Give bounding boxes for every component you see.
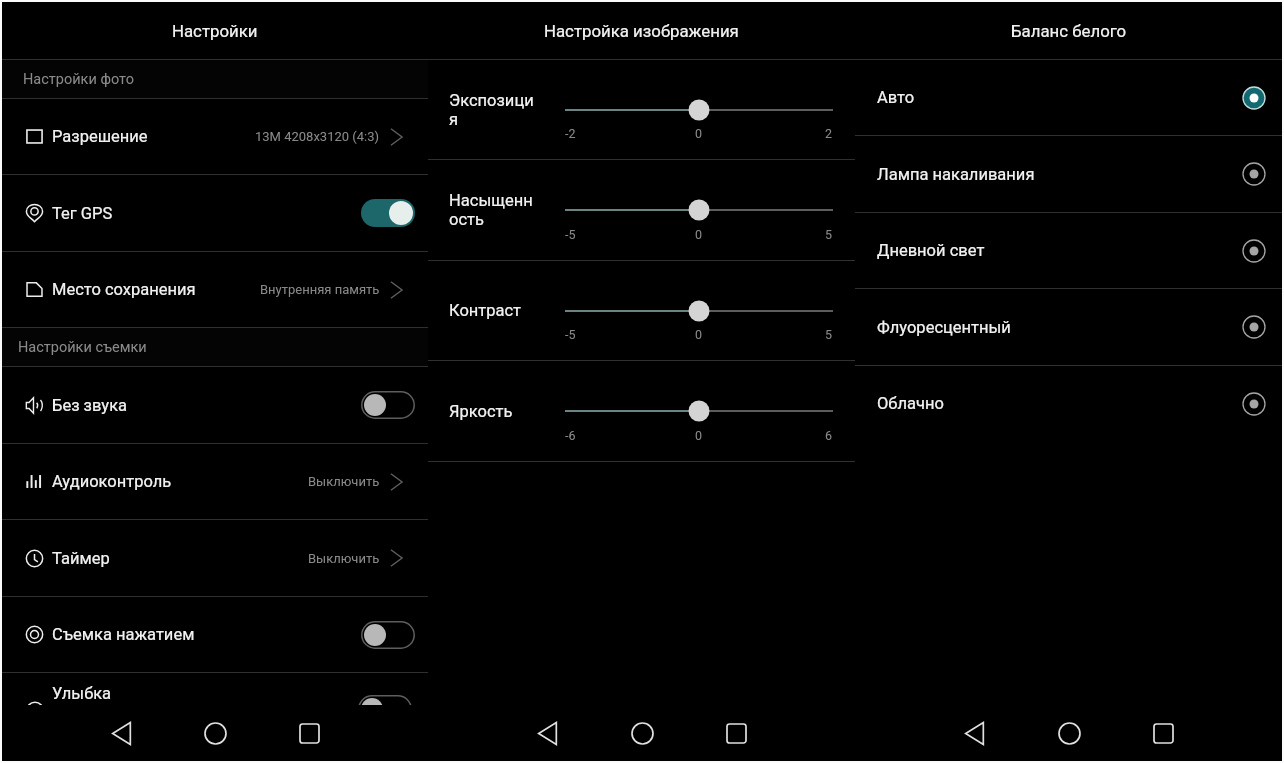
staticText: 13M 4208x3120 (4:3): [255, 129, 380, 144]
button[interactable]: Улыбка: [2, 673, 428, 753]
button[interactable]: Лампа накаливания: [855, 136, 1282, 212]
staticText: Внутренняя память: [260, 282, 380, 297]
staticText: Настройки съемки: [18, 339, 147, 356]
staticText: Настройка изображения: [544, 21, 739, 41]
staticText: Яркость: [449, 402, 513, 421]
staticText: Без звука: [52, 396, 128, 415]
button[interactable]: Таймер: [2, 520, 428, 596]
button[interactable]: Recent apps: [714, 711, 758, 755]
staticText: Настройки фото: [23, 71, 134, 88]
button[interactable]: Разрешение: [2, 99, 428, 174]
staticText: 0: [695, 227, 703, 242]
staticText: Съемка нажатием: [52, 625, 195, 644]
staticText: Таймер: [52, 549, 110, 568]
staticText: Выключить: [308, 474, 380, 489]
button[interactable]: Home: [1047, 711, 1091, 755]
button[interactable]: Recent apps: [1141, 711, 1185, 755]
staticText: Аудиоконтроль: [52, 472, 172, 491]
staticText: Тег GPS: [52, 204, 113, 223]
button[interactable]: Съемка нажатием: [2, 597, 428, 672]
button[interactable]: Экспозиция: [428, 60, 855, 159]
staticText: Насыщенность: [449, 191, 535, 229]
button[interactable]: Насыщенность: [428, 160, 855, 260]
staticText: Разрешение: [52, 127, 148, 146]
button[interactable]: Флуоресцентный: [855, 289, 1282, 365]
button[interactable]: Контраст: [428, 261, 855, 360]
staticText: Улыбка: [52, 684, 112, 703]
staticText: Дневной свет: [877, 241, 985, 260]
staticText: -6: [565, 428, 576, 443]
button[interactable]: Back: [952, 711, 996, 755]
staticText: -5: [565, 327, 576, 342]
staticText: Место сохранения: [52, 280, 196, 299]
button[interactable]: Home: [193, 711, 237, 755]
button[interactable]: Яркость: [428, 361, 855, 461]
staticText: Лампа накаливания: [877, 165, 1035, 184]
button[interactable]: Дневной свет: [855, 213, 1282, 288]
staticText: Авто: [877, 88, 915, 107]
staticText: Облачно: [877, 394, 944, 413]
staticText: Выключить: [308, 551, 380, 566]
staticText: 0: [695, 327, 703, 342]
button[interactable]: Облачно: [855, 366, 1282, 441]
button[interactable]: Back: [525, 711, 569, 755]
staticText: Контраст: [449, 301, 522, 320]
button[interactable]: Авто: [855, 60, 1282, 135]
staticText: 0: [695, 428, 703, 443]
staticText: -5: [565, 227, 576, 242]
staticText: 2: [825, 126, 833, 141]
button[interactable]: Без звука: [2, 367, 428, 443]
button[interactable]: Recent apps: [287, 711, 331, 755]
button[interactable]: Аудиоконтроль: [2, 444, 428, 519]
button[interactable]: Место сохранения: [2, 252, 428, 327]
staticText: Настройки: [172, 21, 258, 41]
staticText: Экспозиция: [449, 91, 535, 129]
button[interactable]: Home: [620, 711, 664, 755]
button[interactable]: Тег GPS: [2, 175, 428, 251]
button[interactable]: Back: [99, 711, 143, 755]
staticText: -2: [565, 126, 576, 141]
staticText: Баланс белого: [1011, 21, 1127, 41]
staticText: 5: [825, 227, 833, 242]
staticText: 5: [825, 327, 833, 342]
staticText: 0: [695, 126, 703, 141]
staticText: 6: [825, 428, 833, 443]
staticText: Флуоресцентный: [877, 318, 1011, 337]
